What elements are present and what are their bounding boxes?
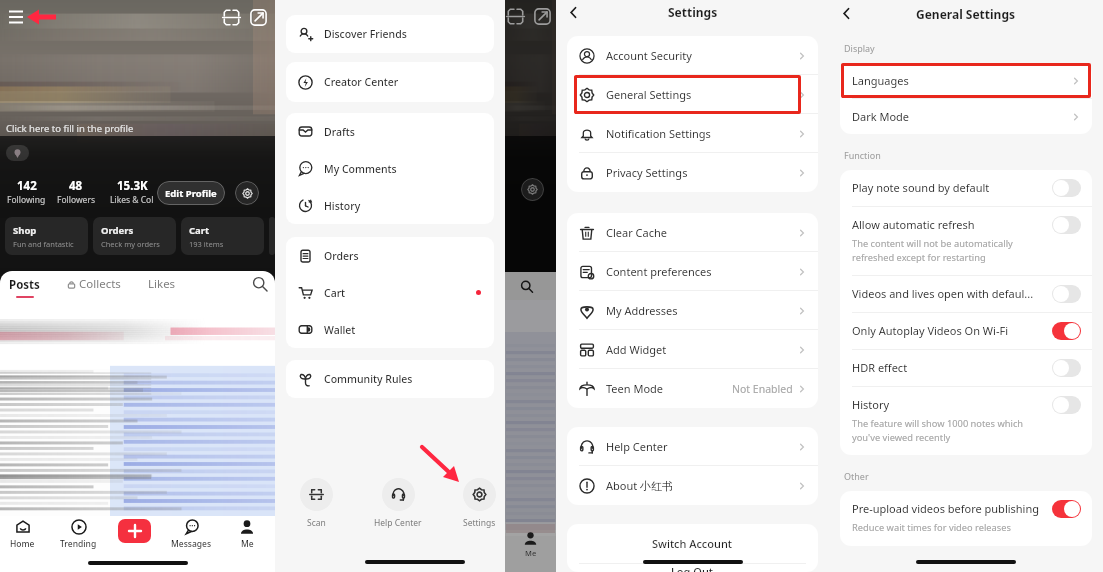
staticText: Followers (57, 194, 95, 206)
button[interactable]: Settings (235, 181, 259, 205)
staticText: Only Autoplay Videos On Wi-Fi (852, 323, 1008, 338)
button[interactable]: Off (1052, 396, 1081, 414)
button[interactable]: Dark Mode (840, 99, 1092, 134)
staticText: The feature will show 1000 notes which y… (852, 417, 1044, 443)
button[interactable]: Wallet (286, 311, 494, 348)
staticText: Likes & Col (110, 194, 154, 206)
button[interactable]: Drafts (286, 113, 494, 150)
button[interactable]: Orders (286, 237, 494, 274)
button[interactable]: Create (118, 519, 151, 543)
button[interactable]: HDR effect (840, 350, 1092, 386)
staticText: Creator Center (324, 75, 399, 89)
button[interactable]: Back (838, 5, 855, 22)
button[interactable]: Off (1052, 285, 1081, 303)
button[interactable]: Settings (463, 478, 496, 529)
button[interactable]: Pre-upload videos before publishing (840, 491, 1092, 546)
staticText: Help Center (606, 439, 668, 454)
button[interactable]: Off (1052, 216, 1081, 234)
staticText: Fun and fantastic (13, 239, 74, 249)
button[interactable]: Community Rules (286, 360, 494, 398)
button[interactable]: Home (0, 516, 48, 550)
staticText: Following (7, 194, 46, 206)
button[interactable]: Menu (4, 5, 28, 29)
staticText: My Addresses (606, 303, 678, 318)
button[interactable]: Share (249, 8, 268, 27)
button[interactable]: Collects (67, 276, 121, 292)
button[interactable]: Content preferences (567, 252, 818, 291)
button[interactable]: On (1052, 322, 1081, 340)
button[interactable]: Creator Center (286, 62, 494, 102)
button[interactable]: Cart (286, 274, 494, 311)
button[interactable]: General Settings (567, 75, 818, 114)
staticText: Settings (668, 4, 718, 20)
staticText: General Settings (606, 87, 692, 102)
staticText: Privacy Settings (606, 165, 688, 180)
staticText: Edit Profile (165, 187, 217, 200)
button[interactable]: Trending (52, 516, 104, 550)
button[interactable]: Messages (165, 516, 217, 550)
button[interactable]: Play note sound by default (840, 170, 1092, 206)
button[interactable]: Privacy Settings (567, 153, 818, 192)
button[interactable]: Location (6, 145, 29, 161)
button[interactable]: Likes (148, 276, 176, 292)
staticText: 193 items (189, 239, 224, 249)
staticText: Videos and lives open with defaul... (852, 286, 1034, 301)
button[interactable]: 15.3K (110, 178, 154, 206)
button[interactable]: Cart (181, 217, 264, 255)
staticText: Allow automatic refresh (852, 217, 975, 232)
staticText: Switch Account (652, 536, 733, 551)
staticText: Cart (189, 224, 210, 237)
button[interactable]: Account Security (567, 36, 818, 75)
button[interactable]: Search (252, 276, 268, 292)
staticText: Add Widget (606, 342, 667, 357)
button[interactable]: Posts (9, 277, 40, 298)
staticText: Collects (79, 276, 121, 292)
button[interactable]: Me (221, 516, 273, 550)
button[interactable]: History (286, 187, 494, 224)
button[interactable]: Help Center (374, 478, 422, 529)
button[interactable]: Switch Account (567, 524, 818, 563)
button[interactable]: Off (1052, 359, 1081, 377)
button[interactable]: About 小红书 (567, 466, 818, 505)
staticText: 15.3K (117, 178, 148, 194)
button[interactable]: Clear Cache (567, 213, 818, 252)
button[interactable]: Languages (840, 63, 1092, 98)
button[interactable]: Videos and lives open with defaul... (840, 276, 1092, 312)
button[interactable]: Notification Settings (567, 114, 818, 153)
button[interactable]: On (1052, 500, 1081, 518)
staticText: Home (10, 538, 35, 550)
staticText: Languages (852, 73, 909, 88)
button[interactable]: 48 (57, 178, 95, 206)
button[interactable]: Teen Mode (567, 369, 818, 408)
staticText: Teen Mode (606, 381, 664, 396)
staticText: My Comments (324, 162, 397, 176)
button[interactable]: Scan QR (222, 8, 241, 27)
button[interactable]: Discover Friends (286, 15, 494, 53)
staticText: Check my orders (101, 239, 160, 249)
staticText: Clear Cache (606, 225, 667, 240)
button[interactable]: Log Out (567, 564, 818, 572)
button[interactable]: History (840, 387, 1092, 455)
button[interactable]: My Addresses (567, 291, 818, 330)
button[interactable]: Off (1052, 179, 1081, 197)
staticText: Content preferences (606, 264, 712, 279)
button[interactable]: Add Widget (567, 330, 818, 369)
button[interactable]: Help Center (567, 427, 818, 466)
staticText: Reduce wait times for video releases (852, 521, 1011, 534)
button[interactable]: Orders (93, 217, 176, 255)
button[interactable]: Edit Profile (157, 181, 225, 205)
staticText: 48 (69, 178, 83, 194)
button[interactable]: Shop (5, 217, 88, 255)
button[interactable]: Back (565, 4, 582, 21)
staticText: About 小红书 (606, 478, 674, 493)
button[interactable]: My Comments (286, 150, 494, 187)
staticText: Click here to fill in the profile (6, 122, 134, 135)
button[interactable]: Scan (300, 478, 333, 529)
button[interactable]: 142 (7, 178, 46, 206)
button[interactable]: Only Autoplay Videos On Wi-Fi (840, 313, 1092, 349)
staticText: Me (241, 538, 254, 550)
button[interactable]: Allow automatic refresh (840, 207, 1092, 275)
staticText: Drafts (324, 125, 355, 139)
staticText: Messages (171, 538, 212, 550)
